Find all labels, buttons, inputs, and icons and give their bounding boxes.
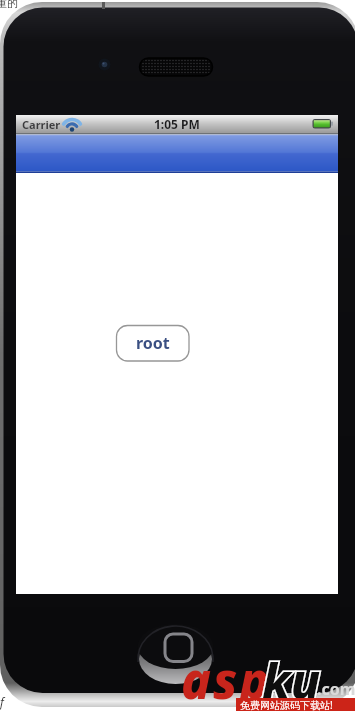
staticText: 1:05 PM: [154, 116, 200, 132]
staticText: asp: [181, 646, 272, 711]
staticText: f: [0, 694, 4, 710]
staticText: 免费网站源码下载站!: [240, 698, 333, 711]
staticText: Carrier: [22, 117, 61, 132]
button[interactable]: root: [116, 325, 189, 361]
staticText: .com: [317, 678, 355, 700]
staticText: ku: [262, 648, 321, 711]
staticText: ku: [262, 648, 321, 711]
staticText: root: [136, 332, 170, 354]
staticText: 重的: [0, 0, 18, 10]
